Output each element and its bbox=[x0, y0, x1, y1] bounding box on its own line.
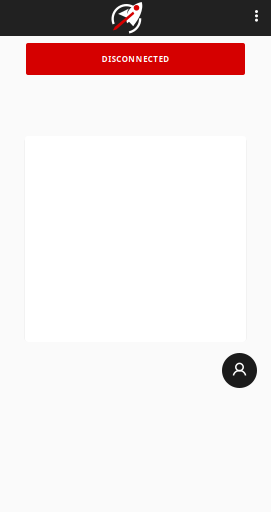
button[interactable]: Account bbox=[222, 353, 257, 388]
button[interactable]: More options bbox=[242, 0, 271, 36]
staticText: DISCONNECTED bbox=[102, 54, 169, 64]
button[interactable]: DISCONNECTED bbox=[26, 43, 245, 75]
